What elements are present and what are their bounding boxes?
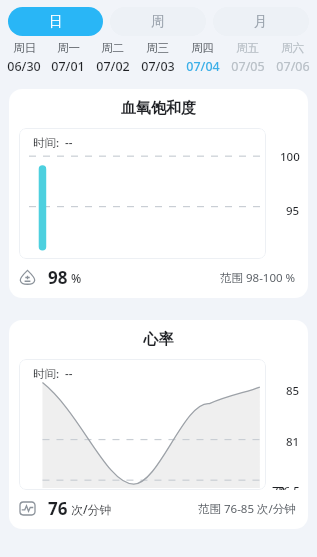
staticText: 07/03 — [141, 58, 175, 75]
button[interactable]: 06/30 — [2, 58, 46, 75]
staticText: 06/30 — [7, 58, 41, 75]
staticText: 日 — [49, 13, 63, 30]
staticText: 100 — [280, 149, 300, 165]
staticText: 范围 98-100 % — [220, 270, 296, 286]
staticText: % — [71, 270, 82, 286]
button[interactable]: 周三 — [135, 41, 180, 55]
button[interactable]: 周六 — [270, 41, 315, 55]
button[interactable]: 周五 — [225, 41, 270, 55]
button[interactable]: 07/01 — [46, 58, 90, 75]
other: 血氧 — [19, 269, 36, 286]
button[interactable]: 血氧饱和度 — [9, 89, 308, 298]
staticText: 07/04 — [186, 58, 220, 75]
staticText: 次/分钟 — [71, 501, 112, 517]
button[interactable]: 月 — [213, 7, 309, 36]
staticText: 95 — [286, 203, 300, 219]
staticText: 07/01 — [51, 58, 85, 75]
staticText: 98 — [48, 266, 68, 289]
staticText: 78 — [272, 483, 286, 490]
staticText: 85 — [286, 383, 300, 399]
staticText: 血氧饱和度 — [9, 99, 308, 118]
staticText: 周四 — [191, 41, 214, 55]
button[interactable]: 07/06 — [270, 58, 315, 75]
staticText: 周 — [151, 13, 165, 30]
staticText: 周日 — [13, 41, 36, 55]
staticText: 周二 — [101, 41, 124, 55]
staticText: 07/02 — [96, 58, 130, 75]
staticText: 周五 — [236, 41, 259, 55]
button[interactable]: 周二 — [90, 41, 135, 55]
button[interactable]: 07/05 — [225, 58, 270, 75]
button[interactable]: 周日 — [2, 41, 46, 55]
button[interactable]: 心率 — [9, 320, 308, 529]
staticText: 月 — [254, 13, 268, 30]
button[interactable]: 日 — [8, 7, 103, 36]
button[interactable]: 周一 — [46, 41, 90, 55]
staticText: 时间: -- — [33, 135, 73, 151]
button[interactable]: 07/04 — [180, 58, 225, 75]
staticText: 07/06 — [276, 58, 310, 75]
button[interactable]: 07/02 — [90, 58, 135, 75]
staticText: 周三 — [146, 41, 169, 55]
staticText: 周六 — [281, 41, 304, 55]
staticText: 时间: -- — [33, 366, 73, 382]
staticText: 心率 — [9, 330, 308, 349]
button[interactable]: 07/03 — [135, 58, 180, 75]
staticText: 81 — [286, 434, 300, 450]
staticText: 07/05 — [231, 58, 265, 75]
button[interactable]: 周 — [110, 7, 206, 36]
button[interactable]: 周四 — [180, 41, 225, 55]
staticText: 周一 — [57, 41, 80, 55]
staticText: 76 — [48, 497, 68, 520]
staticText: 76.5 — [277, 483, 300, 490]
other: 心率 — [19, 500, 36, 517]
staticText: 范围 76-85 次/分钟 — [198, 501, 296, 517]
